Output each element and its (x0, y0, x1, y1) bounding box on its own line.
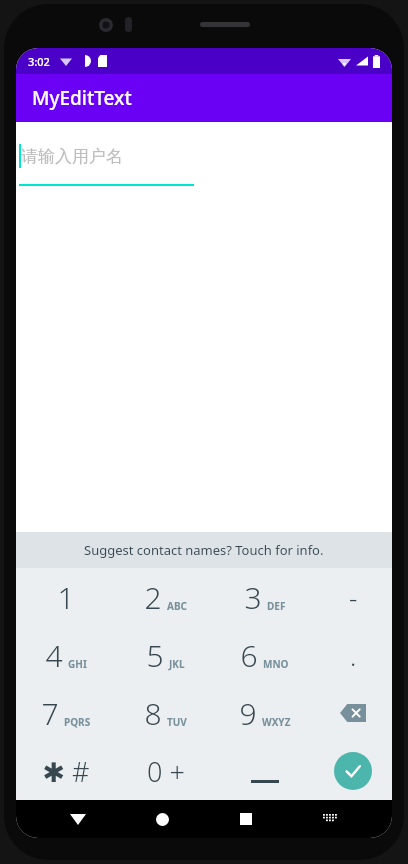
button[interactable]: Suggest contact names? Touch for info. (16, 532, 392, 568)
staticText: 9 (239, 693, 257, 734)
button[interactable]: 5 (116, 626, 215, 684)
button[interactable]: 6 (215, 626, 314, 684)
button[interactable]: 7 (16, 684, 116, 742)
staticText: 0 + (147, 753, 185, 790)
button[interactable]: 2 (116, 568, 215, 626)
button[interactable]: 0 + (116, 742, 215, 800)
button[interactable]: 8 (116, 684, 215, 742)
staticText: GHI (68, 657, 87, 671)
button[interactable]: Recent apps (224, 800, 268, 838)
staticText: ✱ # (42, 753, 90, 790)
staticText: 4 (45, 635, 63, 676)
staticText: - (349, 580, 358, 615)
button[interactable]: 9 (215, 684, 314, 742)
staticText: 请输入用户名 (21, 146, 123, 167)
staticText: MNO (263, 657, 289, 671)
staticText: 3 (244, 577, 262, 618)
button[interactable]: Done (314, 742, 392, 800)
button[interactable]: Home (140, 800, 184, 838)
button[interactable]: Period (314, 626, 392, 684)
staticText: JKL (169, 657, 185, 671)
staticText: ABC (167, 599, 187, 613)
staticText: DEF (267, 599, 286, 613)
button[interactable]: 请输入用户名 (16, 144, 392, 186)
button[interactable]: 4 (16, 626, 116, 684)
staticText: 5 (146, 635, 164, 676)
staticText: 3:02 (28, 54, 50, 69)
staticText: Suggest contact names? Touch for info. (84, 541, 324, 559)
staticText: . (350, 638, 357, 673)
staticText: 1 (57, 577, 75, 618)
button[interactable]: Minus (314, 568, 392, 626)
staticText: 6 (240, 635, 258, 676)
staticText: PQRS (64, 715, 91, 729)
button[interactable]: ✱ # (16, 742, 116, 800)
staticText: WXYZ (262, 715, 291, 729)
staticText: 7 (41, 693, 59, 734)
staticText: MyEditText (32, 85, 132, 111)
button[interactable] (215, 742, 314, 800)
button[interactable]: Back (56, 800, 100, 838)
staticText: 8 (144, 693, 162, 734)
button[interactable]: Switch keyboard (308, 800, 352, 838)
button[interactable]: Backspace (314, 684, 392, 742)
staticText: TUV (167, 715, 187, 729)
staticText: 2 (144, 577, 162, 618)
button[interactable]: 1 (16, 568, 116, 626)
button[interactable]: 3 (215, 568, 314, 626)
